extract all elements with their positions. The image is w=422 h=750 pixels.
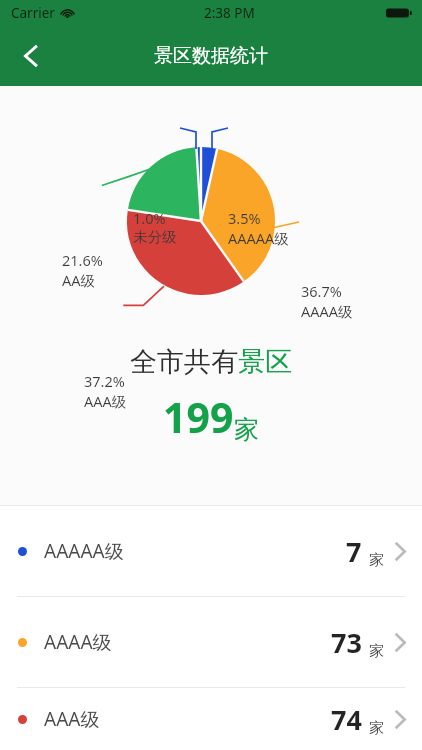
staticText: AAA级 [84,391,127,411]
staticText: 家 [234,414,259,445]
staticText: 家 [369,719,384,738]
staticText: Carrier [11,4,55,22]
button[interactable]: AAAAA级 [0,506,422,596]
staticText: 37.2% [84,371,125,391]
staticText: 1.0% [133,208,166,228]
button[interactable]: Back [7,32,55,80]
staticText: 21.6% [62,250,103,270]
staticText: 未分级 [133,228,177,246]
staticText: AAAAA级 [44,538,124,564]
other: Open AAAAA级 [395,541,406,562]
staticText: 73 [331,624,362,661]
staticText: AA级 [62,270,96,290]
staticText: AAAAA级 [228,228,289,248]
staticText: 36.7% [301,281,342,301]
staticText: AAA级 [44,706,100,732]
button[interactable]: AAAA级 [0,597,422,687]
staticText: 7 [346,533,362,570]
staticText: 199 [163,389,234,445]
other: Open AAA级 [395,709,406,730]
other: Open AAAA级 [395,632,406,653]
button[interactable]: AAA级 [0,688,422,750]
staticText: 景区 [238,345,292,379]
staticText: 家 [369,642,384,661]
staticText: 家 [369,551,384,570]
staticText: 74 [331,701,362,738]
staticText: AAAA级 [44,629,112,655]
staticText: 3.5% [228,208,261,228]
staticText: 2:38 PM [204,4,255,22]
staticText: AAAA级 [301,301,353,321]
staticText: 景区数据统计 [154,44,268,68]
staticText: 全市共有 [130,345,238,379]
